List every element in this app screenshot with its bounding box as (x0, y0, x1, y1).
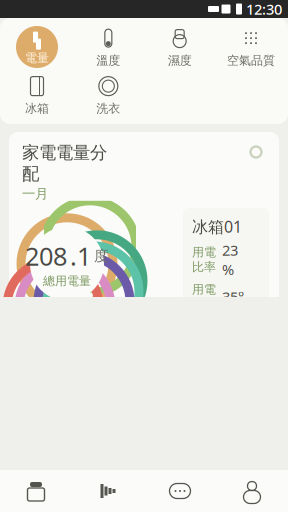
button[interactable]: 濕度 (151, 24, 209, 70)
button[interactable]: 電量 (8, 24, 66, 70)
staticText: 冰箱01 (192, 216, 242, 237)
staticText: 用電比率 (192, 245, 216, 274)
staticText: 空氣品質 (227, 53, 275, 68)
button[interactable]: 洗衣 (79, 72, 137, 118)
staticText: 一月 (22, 186, 48, 202)
staticText: 濕度 (168, 53, 192, 68)
staticText: 23% (222, 240, 238, 279)
button[interactable]: 除濕機01 (14, 392, 138, 492)
staticText: 度 (94, 247, 109, 265)
staticText: .1 (70, 239, 91, 273)
staticText: 29.1 (83, 474, 121, 501)
staticText: 家電電量分配 (22, 142, 107, 185)
staticText: 溫度 (96, 53, 120, 68)
staticText: 總用電量 (30, 480, 78, 495)
button[interactable]: 空氣品質 (222, 24, 280, 70)
staticText: 35° (222, 287, 244, 307)
staticText: 冰箱 (25, 101, 49, 116)
button[interactable]: Settings (246, 142, 266, 162)
button[interactable]: Profile (216, 471, 288, 511)
staticText: 總用電量 (166, 480, 214, 495)
staticText: 208 (25, 239, 67, 273)
staticText: 12:30 (246, 0, 282, 19)
button[interactable]: Home (0, 471, 72, 511)
staticText: 洗衣 (96, 101, 120, 116)
button[interactable]: Messages (144, 471, 216, 511)
staticText: 總用電量 (43, 274, 91, 288)
button[interactable]: Statistics (72, 471, 144, 511)
button[interactable]: 溫度 (79, 24, 137, 70)
button[interactable]: 冰箱 (8, 72, 66, 118)
staticText: 用電度數 (192, 282, 216, 312)
button[interactable]: 冷氣01 (150, 392, 274, 492)
staticText: 59.2 (219, 474, 257, 501)
staticText: 電量 (25, 51, 49, 65)
